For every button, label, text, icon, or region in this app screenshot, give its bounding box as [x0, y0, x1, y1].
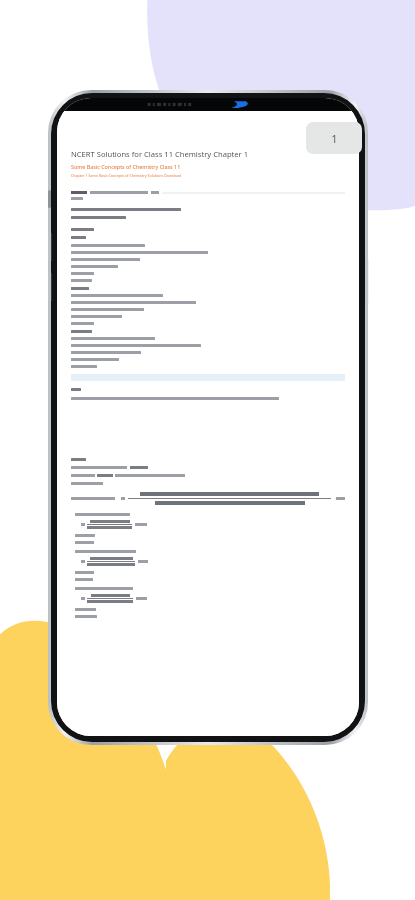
staticText: Chapter 1 Some Basic Concepts of Chemist… — [71, 173, 182, 178]
button[interactable]: NCERT Solutions for Class 11 Chemistry C… — [48, 90, 368, 745]
staticText: NCERT Solutions for Class 11 Chemistry C… — [71, 149, 249, 159]
button[interactable]: Page 1 — [306, 122, 362, 154]
staticText: Some Basic Concepts of Chemistry Class 1… — [71, 163, 181, 170]
staticText: 1 — [331, 131, 338, 146]
